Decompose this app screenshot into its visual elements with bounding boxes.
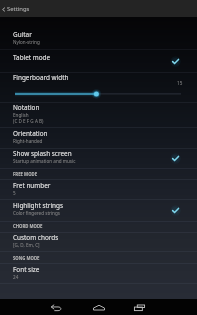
staticText: Fret number	[13, 181, 51, 190]
staticText: Show splash screen	[13, 149, 72, 158]
staticText: Highlight strings	[13, 201, 64, 210]
staticText: Font size	[13, 265, 40, 274]
staticText: SONG MODE	[13, 255, 40, 261]
staticText: Color fingered strings	[13, 210, 60, 216]
button[interactable]: Notation	[0, 103, 197, 127]
staticText: Tablet mode	[13, 53, 51, 62]
staticText: Nylon-string	[13, 39, 40, 45]
staticText: Guitar	[13, 30, 32, 39]
staticText: 15	[177, 80, 183, 86]
other: Show splash screen	[169, 152, 182, 165]
staticText: [G, D, Em, C]	[13, 242, 40, 248]
button[interactable]: Fingerboard width	[0, 73, 197, 102]
other: Tablet mode	[169, 55, 182, 68]
button[interactable]: Font size	[0, 264, 197, 283]
button[interactable]: Home	[88, 299, 109, 315]
staticText: Settings	[7, 5, 30, 13]
button[interactable]: Show splash screen	[0, 149, 197, 168]
button[interactable]: Tablet mode	[0, 50, 197, 72]
staticText: Startup animation and music	[13, 158, 76, 164]
button[interactable]: Settings	[0, 3, 38, 15]
button[interactable]: Recent apps	[129, 299, 150, 315]
staticText: Orientation	[13, 129, 48, 138]
staticText: Right-handed	[13, 138, 43, 144]
button[interactable]: Custom chords	[0, 233, 197, 251]
other: Highlight strings	[169, 204, 182, 217]
button[interactable]: Highlight strings	[0, 200, 197, 221]
staticText: Custom chords	[13, 233, 59, 242]
staticText: English	[13, 112, 29, 118]
staticText: Fingerboard width	[13, 73, 69, 82]
button[interactable]: Back	[46, 299, 67, 315]
button[interactable]: Fret number	[0, 180, 197, 199]
staticText: CHORD MODE	[13, 223, 43, 229]
staticText: FREE MODE	[13, 171, 38, 177]
staticText: 24	[13, 274, 19, 280]
staticText: Notation	[13, 103, 40, 112]
button[interactable]: Orientation	[0, 128, 197, 148]
button[interactable]: Guitar	[0, 23, 197, 49]
staticText: 5	[13, 190, 16, 196]
staticText: (C D E F G A B)	[13, 118, 44, 124]
